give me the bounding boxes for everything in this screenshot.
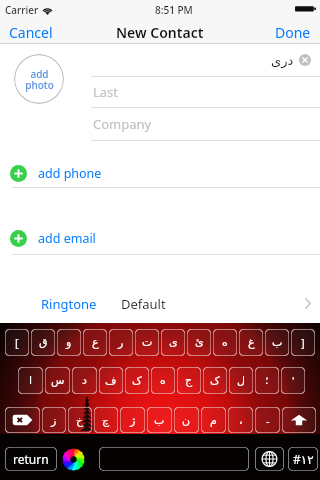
button[interactable]: ژ bbox=[120, 407, 145, 433]
staticText: ه bbox=[160, 374, 166, 387]
button[interactable]: ئ bbox=[187, 329, 211, 356]
staticText: add phone bbox=[38, 165, 102, 182]
button[interactable]: ر bbox=[109, 329, 133, 356]
staticText: ا bbox=[29, 374, 33, 387]
staticText: ل bbox=[237, 374, 245, 387]
staticText: ی bbox=[169, 336, 178, 349]
button[interactable]: ؛ bbox=[255, 367, 279, 394]
button[interactable]: ت bbox=[135, 329, 159, 356]
staticText: #۱۲ bbox=[293, 451, 314, 467]
button[interactable]: ز bbox=[42, 407, 66, 433]
button[interactable]: add phone bbox=[0, 157, 320, 189]
button[interactable]: ، bbox=[228, 407, 253, 433]
staticText: ' bbox=[292, 373, 295, 388]
button[interactable]: دری bbox=[0, 44, 320, 76]
button[interactable]: ' bbox=[281, 367, 305, 394]
button[interactable]: ی bbox=[161, 329, 185, 356]
staticText: 8:51 PM bbox=[155, 3, 193, 17]
button[interactable]: د bbox=[72, 367, 97, 394]
button[interactable]: Company bbox=[0, 107, 320, 140]
button[interactable]: ه bbox=[151, 367, 175, 394]
button[interactable]: ا bbox=[18, 367, 43, 394]
button[interactable]: ع bbox=[83, 329, 107, 356]
button[interactable]: غ bbox=[239, 329, 263, 356]
button[interactable]: add email bbox=[0, 222, 320, 254]
staticText: ج bbox=[185, 374, 193, 387]
staticText: و bbox=[66, 336, 72, 349]
button[interactable]: Backspace bbox=[5, 407, 40, 433]
staticText: Cancel bbox=[9, 23, 53, 41]
staticText: Company bbox=[93, 115, 152, 133]
button[interactable]: س bbox=[45, 367, 70, 394]
button[interactable]: #۱۲ bbox=[288, 447, 318, 471]
staticText: ئ bbox=[195, 336, 204, 349]
staticText: return bbox=[13, 451, 49, 467]
staticText: ؛ bbox=[265, 374, 269, 387]
staticText: ن bbox=[182, 414, 191, 427]
staticText: ز bbox=[51, 414, 57, 427]
button[interactable]: [ bbox=[5, 329, 29, 356]
button[interactable]: م bbox=[201, 407, 226, 433]
button[interactable]: - bbox=[255, 407, 280, 433]
button[interactable]: چ bbox=[94, 407, 118, 433]
staticText: ب bbox=[154, 414, 165, 427]
staticText: Done bbox=[275, 23, 311, 41]
button[interactable]: و bbox=[57, 329, 81, 356]
button[interactable]: خ bbox=[68, 407, 92, 433]
staticText: خ bbox=[76, 414, 84, 427]
staticText: Ringtone bbox=[41, 295, 97, 313]
button[interactable]: Cancel bbox=[0, 20, 59, 44]
button[interactable]: ک bbox=[125, 367, 149, 394]
staticText: ق bbox=[39, 336, 48, 349]
staticText: Carrier bbox=[5, 3, 39, 17]
staticText: د bbox=[82, 374, 87, 387]
button[interactable]: ف bbox=[99, 367, 123, 394]
button[interactable]: ج bbox=[177, 367, 201, 394]
staticText: ، bbox=[239, 414, 243, 427]
staticText: ه bbox=[222, 336, 228, 349]
button[interactable]: add photo bbox=[14, 54, 64, 104]
staticText: س bbox=[51, 374, 65, 387]
staticText: غ bbox=[248, 336, 255, 349]
staticText: - bbox=[266, 413, 270, 428]
button[interactable]: ن bbox=[174, 407, 199, 433]
button[interactable]: ب bbox=[147, 407, 172, 433]
button[interactable]: Clear text bbox=[299, 54, 311, 66]
button[interactable]: Shift bbox=[282, 407, 316, 433]
staticText: [ bbox=[15, 335, 19, 350]
staticText: دری bbox=[271, 53, 294, 68]
staticText: Default bbox=[121, 295, 166, 313]
staticText: م bbox=[210, 414, 217, 427]
staticText: ر bbox=[118, 336, 124, 349]
staticText: New Contact bbox=[116, 23, 204, 42]
staticText: ب bbox=[272, 336, 283, 349]
button[interactable]: Done bbox=[269, 20, 320, 44]
staticText: add photo bbox=[25, 67, 54, 92]
staticText: ک bbox=[132, 374, 142, 387]
staticText: ک bbox=[210, 374, 220, 387]
button[interactable]: ب bbox=[265, 329, 289, 356]
staticText: Last bbox=[93, 83, 119, 101]
button[interactable]: Last bbox=[0, 76, 320, 107]
staticText: ف bbox=[105, 374, 117, 387]
staticText: ع bbox=[92, 336, 99, 349]
staticText: چ bbox=[102, 414, 110, 427]
staticText: ] bbox=[301, 335, 305, 350]
button[interactable]: ک bbox=[203, 367, 227, 394]
button[interactable]: ل bbox=[229, 367, 253, 394]
button[interactable]: ] bbox=[291, 329, 315, 356]
staticText: ژ bbox=[130, 414, 136, 427]
staticText: add email bbox=[38, 230, 96, 247]
staticText: ت bbox=[142, 336, 153, 349]
button[interactable]: Keyboard theme bbox=[63, 449, 84, 470]
button[interactable]: ق bbox=[31, 329, 55, 356]
button[interactable]: Space bbox=[99, 447, 249, 471]
button[interactable]: return bbox=[5, 447, 57, 471]
button[interactable]: Switch keyboard language bbox=[255, 447, 284, 471]
button[interactable]: ه bbox=[213, 329, 237, 356]
button[interactable]: Ringtone bbox=[0, 287, 320, 320]
